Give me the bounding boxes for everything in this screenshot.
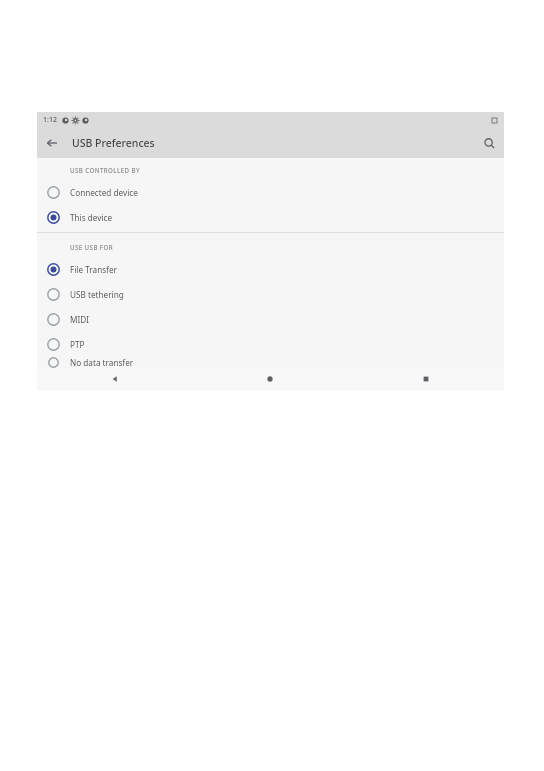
button[interactable]: Connected device xyxy=(37,180,504,205)
staticText: 1:12 xyxy=(43,115,57,125)
button[interactable]: Search xyxy=(474,128,504,158)
staticText: File Transfer xyxy=(70,264,117,275)
staticText: USE USB FOR xyxy=(70,243,114,251)
staticText: PTP xyxy=(70,339,85,350)
button[interactable]: File Transfer xyxy=(37,257,504,282)
button[interactable]: Back xyxy=(37,368,192,390)
staticText: USB CONTROLLED BY xyxy=(70,166,140,174)
button[interactable]: MIDI xyxy=(37,307,504,332)
staticText: Connected device xyxy=(70,187,138,198)
button[interactable]: This device xyxy=(37,205,504,230)
staticText: This device xyxy=(70,212,113,223)
staticText: USB Preferences xyxy=(72,136,155,150)
button[interactable]: No data transfer xyxy=(37,357,504,368)
staticText: USB tethering xyxy=(70,289,124,300)
button[interactable]: Recents xyxy=(348,368,504,390)
button[interactable]: Home xyxy=(192,368,348,390)
staticText: MIDI xyxy=(70,314,89,325)
button[interactable]: USB tethering xyxy=(37,282,504,307)
button[interactable]: PTP xyxy=(37,332,504,357)
button[interactable]: Back xyxy=(37,128,67,158)
staticText: No data transfer xyxy=(70,357,134,368)
